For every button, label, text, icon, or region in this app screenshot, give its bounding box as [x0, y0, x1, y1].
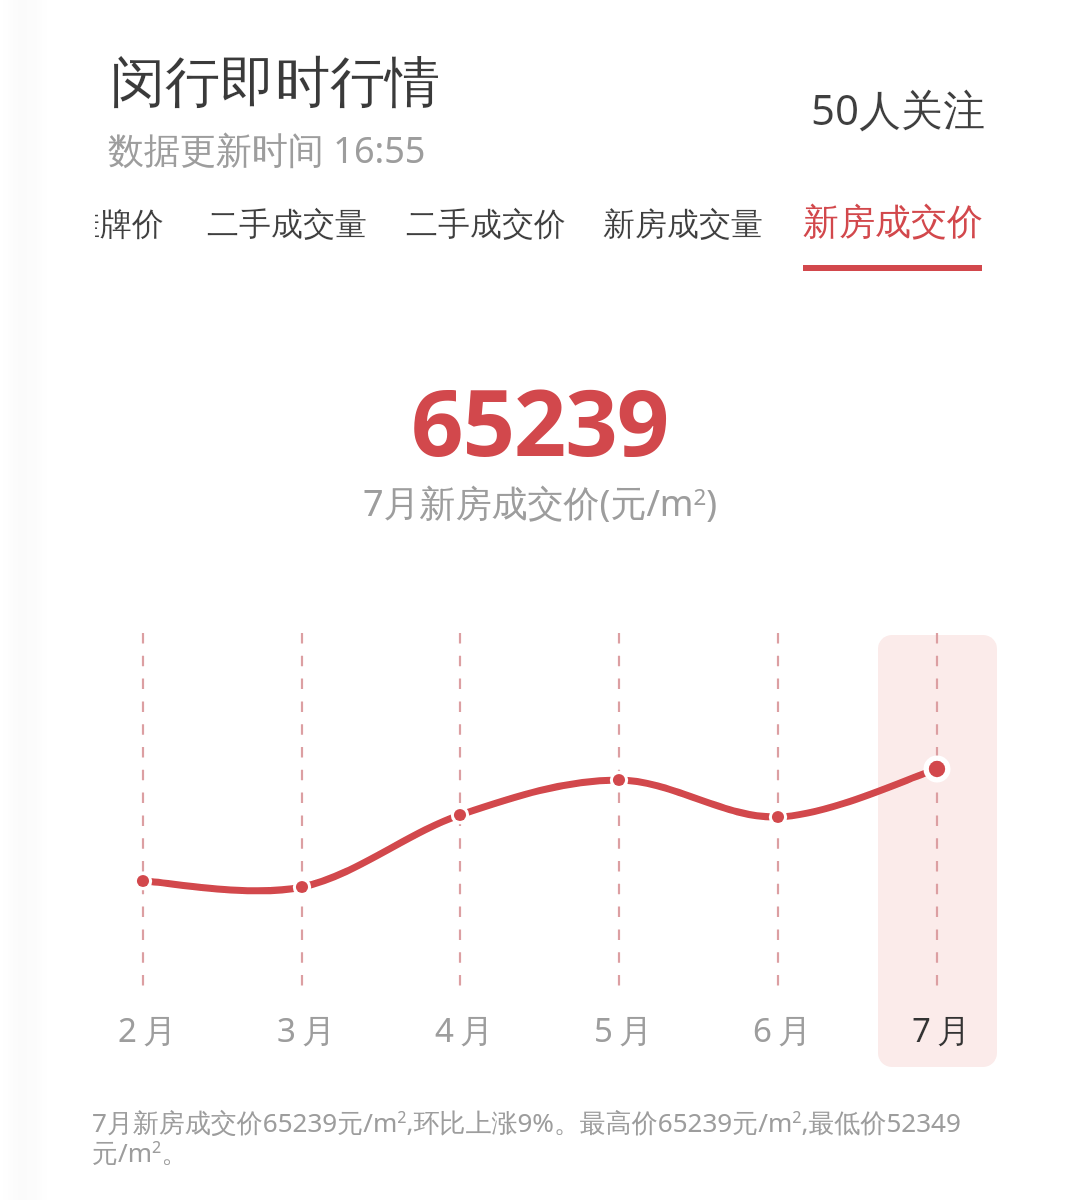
staticText: 数据更新时间 16:55 — [108, 125, 426, 174]
button[interactable]: 挂牌价 — [95, 201, 164, 263]
staticText: 7月 — [912, 1007, 976, 1052]
staticText: 新房成交量 — [603, 204, 763, 244]
other: 新房成交价走势折线图 — [60, 620, 1020, 1080]
staticText: 挂牌价 — [95, 204, 164, 244]
button[interactable]: 7月 — [894, 1007, 994, 1057]
button[interactable]: 4月 — [417, 1007, 517, 1057]
button[interactable]: 5月 — [576, 1007, 676, 1057]
staticText: 65239 — [411, 358, 669, 483]
staticText: 新房成交价 — [803, 201, 983, 244]
button[interactable]: 二手成交价 — [406, 201, 566, 263]
button[interactable]: 新房成交价 — [803, 201, 983, 271]
button[interactable]: 新房成交量 — [603, 201, 763, 263]
staticText: 闵行即时行情 — [110, 48, 440, 117]
staticText: 6月 — [753, 1007, 817, 1052]
button[interactable]: 3月 — [259, 1007, 359, 1057]
button[interactable]: 50人关注 — [700, 80, 986, 137]
button[interactable]: 6月 — [735, 1007, 835, 1057]
staticText: 二手成交量 — [207, 204, 367, 244]
staticText: 3月 — [277, 1007, 341, 1052]
staticText: 7月新房成交价65239元/m2,环比上涨9%。最高价65239元/m2,最低价… — [92, 1104, 1052, 1140]
button[interactable]: 2月 — [100, 1007, 200, 1057]
button[interactable]: 二手成交量 — [207, 201, 367, 263]
staticText: 2月 — [118, 1007, 182, 1052]
staticText: 二手成交价 — [406, 204, 566, 244]
staticText: 5月 — [594, 1007, 658, 1052]
staticText: 4月 — [435, 1007, 499, 1052]
staticText: 元/m2。 — [92, 1134, 392, 1170]
staticText: 7月新房成交价(元/m2) — [363, 478, 718, 527]
staticText: 50人关注 — [811, 80, 986, 137]
